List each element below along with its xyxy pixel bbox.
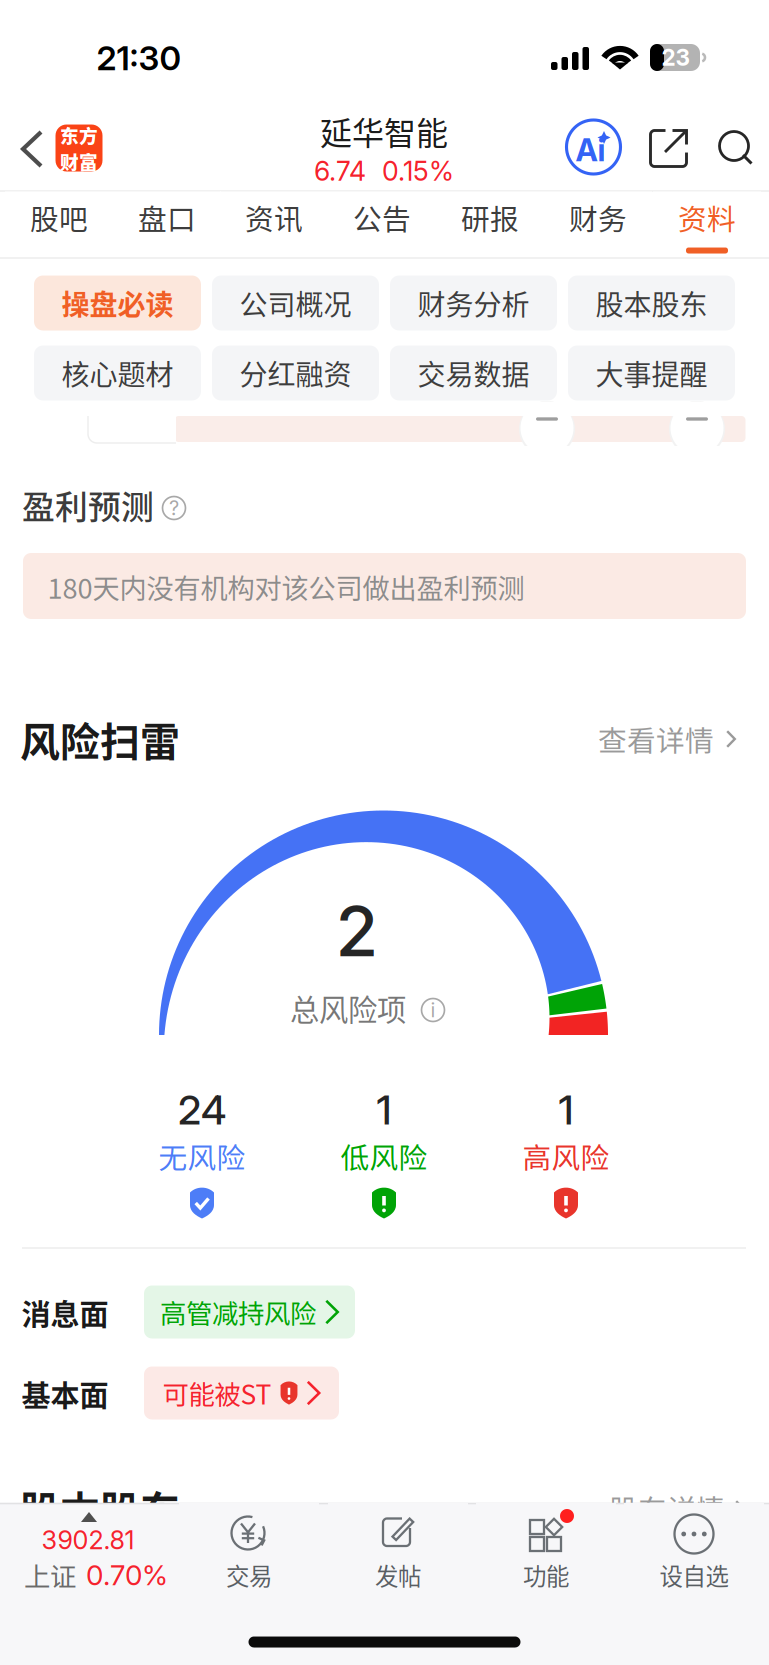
- staticText: 低风险: [340, 1135, 427, 1177]
- staticText: 无风险: [158, 1135, 245, 1177]
- staticText: ?: [169, 496, 179, 520]
- staticText: 分红融资: [239, 353, 351, 393]
- staticText: 总风险项: [290, 987, 406, 1029]
- button[interactable]: 交易: [179, 1503, 319, 1603]
- staticText: 功能: [523, 1558, 569, 1592]
- staticText: 设自选: [659, 1558, 728, 1592]
- staticText: 资讯: [245, 197, 303, 238]
- button[interactable]: 高管减持风险: [144, 1285, 355, 1338]
- staticText: 股本股东: [595, 283, 707, 323]
- button[interactable]: 研报: [436, 191, 544, 258]
- button[interactable]: 交易数据: [390, 345, 557, 400]
- staticText: 财富: [60, 147, 98, 174]
- staticText: 高管减持风险: [160, 1293, 316, 1331]
- button[interactable]: Back: [0, 0, 769, 1665]
- staticText: 资料: [678, 197, 736, 238]
- button[interactable]: 股本股东: [568, 275, 735, 330]
- button[interactable]: 股吧: [5, 191, 113, 258]
- staticText: 6.74: [314, 155, 366, 187]
- staticText: 上证: [24, 1556, 76, 1594]
- staticText: 交易: [226, 1558, 272, 1592]
- staticText: 基本面: [21, 1373, 108, 1415]
- staticText: i: [430, 998, 435, 1022]
- staticText: 财务: [569, 197, 627, 238]
- button[interactable]: 公告: [328, 191, 436, 258]
- button[interactable]: 核心题材: [34, 345, 201, 400]
- staticText: 2: [335, 889, 378, 973]
- staticText: 股本股东: [20, 1479, 180, 1537]
- button[interactable]: 设自选: [624, 1503, 764, 1603]
- button[interactable]: 资料: [653, 191, 761, 258]
- staticText: 核心题材: [61, 353, 173, 393]
- staticText: 交易数据: [417, 353, 529, 393]
- button[interactable]: 可能被ST: [144, 1366, 339, 1419]
- button[interactable]: AI assistant: [561, 115, 625, 179]
- staticText: 0.15%: [382, 155, 454, 187]
- button[interactable]: 盘口: [113, 191, 221, 258]
- button[interactable]: 查看详情: [584, 708, 750, 770]
- staticText: 大事提醒: [595, 353, 707, 393]
- button[interactable]: Search: [718, 130, 756, 168]
- staticText: 股吧: [30, 197, 88, 238]
- button[interactable]: 分红融资: [212, 345, 379, 400]
- staticText: 公司概况: [239, 283, 351, 323]
- staticText: 高风险: [522, 1135, 609, 1177]
- staticText: 发帖: [375, 1558, 421, 1592]
- staticText: 操盘必读: [61, 283, 173, 323]
- staticText: 0.70%: [86, 1558, 168, 1592]
- staticText: 公告: [353, 197, 411, 238]
- button[interactable]: 财务: [544, 191, 652, 258]
- button[interactable]: 公司概况: [212, 275, 379, 330]
- staticText: 东方: [60, 121, 98, 148]
- staticText: 股东详情: [609, 1487, 725, 1529]
- staticText: 3902.81: [41, 1525, 134, 1555]
- button[interactable]: 大事提醒: [568, 345, 735, 400]
- staticText: 财务分析: [417, 283, 529, 323]
- staticText: 风险扫雷: [20, 710, 180, 768]
- button[interactable]: Share: [648, 128, 689, 169]
- button[interactable]: 发帖: [328, 1503, 468, 1603]
- staticText: 查看详情: [598, 718, 714, 760]
- staticText: 1: [376, 1086, 391, 1134]
- staticText: 消息面: [21, 1292, 108, 1334]
- staticText: 可能被ST: [162, 1374, 271, 1412]
- staticText: 24: [178, 1086, 226, 1134]
- button[interactable]: 功能: [476, 1503, 616, 1603]
- staticText: Ai: [575, 131, 605, 168]
- button[interactable]: 资讯: [220, 191, 328, 258]
- staticText: 23: [661, 44, 690, 71]
- staticText: 盈利预测: [22, 481, 154, 529]
- staticText: 180天内没有机构对该公司做出盈利预测: [47, 567, 524, 607]
- staticText: 延华智能: [320, 108, 448, 154]
- staticText: 研报: [461, 197, 519, 238]
- button[interactable]: 操盘必读: [34, 275, 201, 330]
- staticText: 1: [558, 1086, 573, 1134]
- button[interactable]: 财务分析: [390, 275, 557, 330]
- staticText: 盘口: [138, 197, 196, 238]
- staticText: 21:30: [96, 38, 181, 78]
- button[interactable]: 3902.81: [0, 0, 769, 1665]
